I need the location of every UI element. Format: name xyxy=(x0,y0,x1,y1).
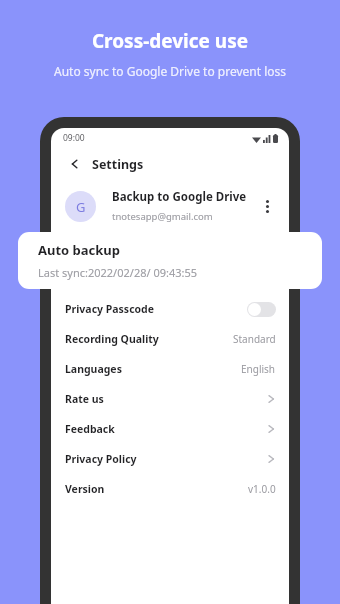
staticText: Auto sync to Google Drive to prevent los… xyxy=(0,63,340,79)
staticText: Languages xyxy=(65,362,122,376)
button[interactable]: Privacy Policy xyxy=(51,444,289,474)
staticText: Backup to Google Drive xyxy=(112,189,247,205)
button[interactable]: Back xyxy=(65,154,85,174)
staticText: G xyxy=(76,198,86,216)
staticText: English xyxy=(241,362,276,376)
staticText: Settings xyxy=(92,156,144,173)
staticText: 09:00 xyxy=(63,132,85,144)
button[interactable]: Version xyxy=(51,474,289,504)
staticText: Recording Quality xyxy=(65,332,159,346)
button[interactable]: More options xyxy=(256,195,278,217)
staticText: Privacy Policy xyxy=(65,452,137,466)
staticText: Version xyxy=(65,482,105,496)
staticText: v1.0.0 xyxy=(248,482,276,496)
staticText: Last sync:2022/02/28/ 09:43:55 xyxy=(38,265,198,280)
button[interactable]: Languages xyxy=(51,354,289,384)
staticText: Privacy Passcode xyxy=(65,302,155,316)
button[interactable]: Feedback xyxy=(51,414,289,444)
staticText: Standard xyxy=(233,332,276,346)
staticText: Rate us xyxy=(65,392,104,406)
staticText: Cross-device use xyxy=(0,28,340,54)
button[interactable]: G xyxy=(51,180,289,232)
staticText: tnotesapp@gmail.com xyxy=(112,210,213,223)
button[interactable]: Auto backup xyxy=(18,232,322,289)
button[interactable]: Privacy Passcode xyxy=(51,294,289,324)
staticText: Feedback xyxy=(65,422,115,436)
button[interactable]: Privacy Passcode toggle xyxy=(247,302,276,317)
button[interactable]: Recording Quality xyxy=(51,324,289,354)
staticText: Auto backup xyxy=(38,241,121,259)
button[interactable]: Rate us xyxy=(51,384,289,414)
